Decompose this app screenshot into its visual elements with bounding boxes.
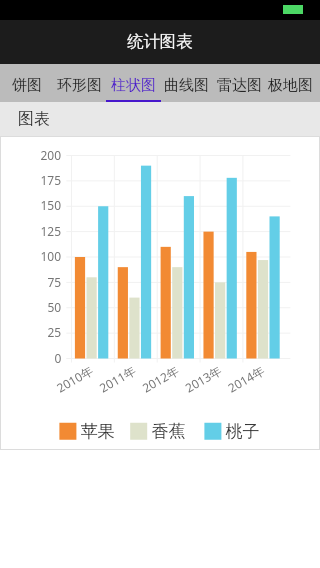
staticText: 饼图 [12, 76, 42, 95]
button[interactable]: 柱状图 [106, 64, 161, 102]
button[interactable]: 环形图 [51, 64, 107, 102]
button[interactable]: 曲线图 [159, 64, 214, 102]
staticText: 极地图 [268, 76, 313, 95]
staticText: 雷达图 [217, 76, 262, 95]
staticText: 环形图 [57, 76, 102, 95]
button[interactable]: 饼图 [6, 64, 47, 102]
button[interactable]: 极地图 [263, 64, 318, 102]
staticText: 曲线图 [164, 76, 209, 95]
staticText: 柱状图 [111, 76, 156, 95]
staticText: 统计图表 [127, 31, 193, 52]
button[interactable]: 雷达图 [211, 64, 267, 102]
staticText: 图表 [18, 109, 50, 129]
